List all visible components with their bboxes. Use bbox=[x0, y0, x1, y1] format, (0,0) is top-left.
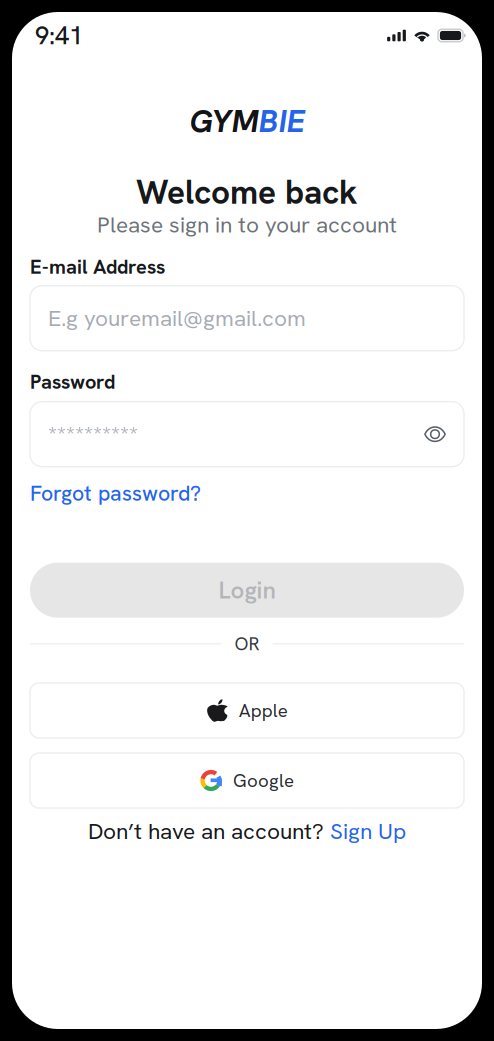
staticText: E.g youremail@gmail.com bbox=[48, 303, 306, 333]
staticText: 9:41 bbox=[35, 19, 83, 52]
staticText: Forgot password? bbox=[30, 479, 201, 507]
staticText: Google bbox=[233, 768, 294, 793]
staticText: E-mail Address bbox=[30, 254, 165, 280]
button[interactable]: Don’t have an account? bbox=[88, 808, 406, 841]
staticText: Please sign in to your account bbox=[97, 210, 397, 239]
staticText: Apple bbox=[239, 698, 288, 723]
staticText: Password bbox=[30, 369, 115, 395]
staticText: ********** bbox=[48, 419, 138, 449]
staticText: Login bbox=[218, 575, 275, 606]
button[interactable]: Forgot password? bbox=[30, 467, 201, 502]
staticText: Don’t have an account? bbox=[88, 816, 330, 846]
button[interactable]: Google bbox=[30, 753, 464, 808]
staticText: Welcome back bbox=[136, 170, 358, 214]
button[interactable]: Login bbox=[30, 563, 464, 618]
button[interactable]: Apple bbox=[30, 683, 464, 738]
staticText: Sign Up bbox=[330, 816, 406, 846]
button[interactable]: Show password bbox=[424, 423, 446, 445]
staticText: OR bbox=[234, 632, 259, 656]
staticText: GYM bbox=[189, 100, 258, 142]
staticText: BIE bbox=[258, 100, 304, 142]
